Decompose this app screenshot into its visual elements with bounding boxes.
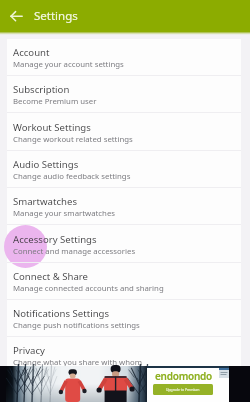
button[interactable]: Ad choices (219, 368, 229, 378)
staticText: Subscription (13, 83, 70, 96)
button[interactable]: endomondo (0, 366, 250, 402)
staticText: Change push notifications settings (13, 320, 140, 331)
button[interactable]: Accessory Settings (7, 226, 241, 263)
button[interactable]: Workout Settings (7, 114, 241, 151)
staticText: Manage your smartwatches (13, 208, 116, 219)
staticText: Connect and manage accessories (13, 246, 136, 257)
button[interactable]: Privacy (7, 337, 241, 374)
staticText: Smartwatches (13, 195, 77, 208)
button[interactable]: Account (7, 39, 241, 76)
staticText: Accessory Settings (13, 233, 97, 246)
staticText: Change workout related settings (13, 134, 133, 145)
staticText: Upgrade to Premium (166, 387, 200, 392)
button[interactable]: Upgrade to Premium (153, 384, 213, 395)
staticText: endomondo (155, 369, 212, 383)
button[interactable]: Subscription (7, 76, 241, 113)
button[interactable]: Smartwatches (7, 188, 241, 225)
staticText: Notifications Settings (13, 307, 110, 320)
staticText: Privacy (13, 344, 45, 357)
staticText: Manage connected accounts and sharing (13, 283, 164, 294)
staticText: Audio Settings (13, 158, 79, 171)
staticText: Workout Settings (13, 121, 91, 134)
staticText: Settings (34, 8, 78, 24)
staticText: Connect & Share (13, 270, 88, 283)
staticText: Become Premium user (13, 96, 97, 107)
button[interactable]: Audio Settings (7, 151, 241, 188)
button[interactable]: Back (4, 4, 28, 28)
staticText: Change audio feedback settings (13, 171, 131, 182)
staticText: Account (13, 46, 50, 59)
staticText: Change what you share with whom (13, 357, 143, 368)
staticText: Manage your account settings (13, 59, 124, 70)
button[interactable]: Notifications Settings (7, 300, 241, 337)
button[interactable]: Connect & Share (7, 263, 241, 300)
